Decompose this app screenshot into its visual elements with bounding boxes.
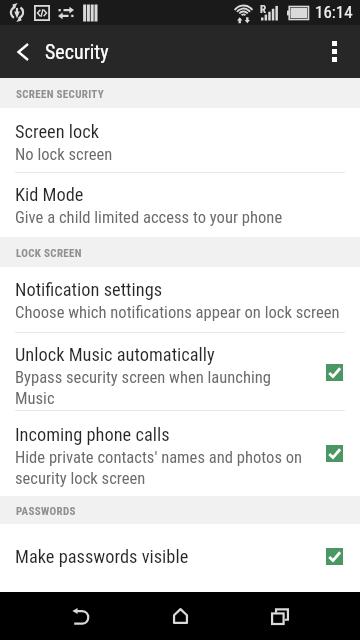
staticText: Incoming phone calls [15, 424, 170, 446]
staticText: Give a child limited access to your phon… [15, 208, 283, 227]
staticText: LOCK SCREEN [16, 247, 82, 260]
staticText: R [260, 3, 267, 16]
button[interactable]: Incoming phone calls [0, 411, 360, 496]
button[interactable]: More options [308, 25, 360, 78]
staticText: Unlock Music automatically [15, 344, 215, 366]
staticText: Bypass security screen when launching Mu… [15, 368, 311, 408]
button[interactable]: Unlock Music automatically [0, 333, 360, 411]
staticText: PASSWORDS [16, 505, 76, 518]
button[interactable]: Navigate up [0, 25, 45, 78]
staticText: Kid Mode [15, 184, 84, 206]
staticText: Security [45, 40, 109, 63]
staticText: Notification settings [15, 279, 163, 301]
button[interactable]: Back [31, 592, 131, 640]
button[interactable]: Make passwords visible [0, 524, 360, 592]
button[interactable]: Notification settings [0, 267, 360, 333]
staticText: Make passwords visible [15, 546, 189, 568]
button[interactable]: Home [131, 592, 230, 640]
button[interactable]: Screen lock [0, 108, 360, 173]
staticText: 16:14 [315, 2, 353, 22]
staticText: SCREEN SECURITY [16, 88, 105, 101]
button[interactable]: Kid Mode [0, 173, 360, 237]
staticText: No lock screen [15, 145, 113, 164]
staticText: Hide private contacts' names and photos … [15, 448, 311, 488]
button[interactable]: Recent apps [230, 592, 329, 640]
staticText: Choose which notifications appear on loc… [15, 303, 340, 322]
staticText: Screen lock [15, 121, 100, 143]
